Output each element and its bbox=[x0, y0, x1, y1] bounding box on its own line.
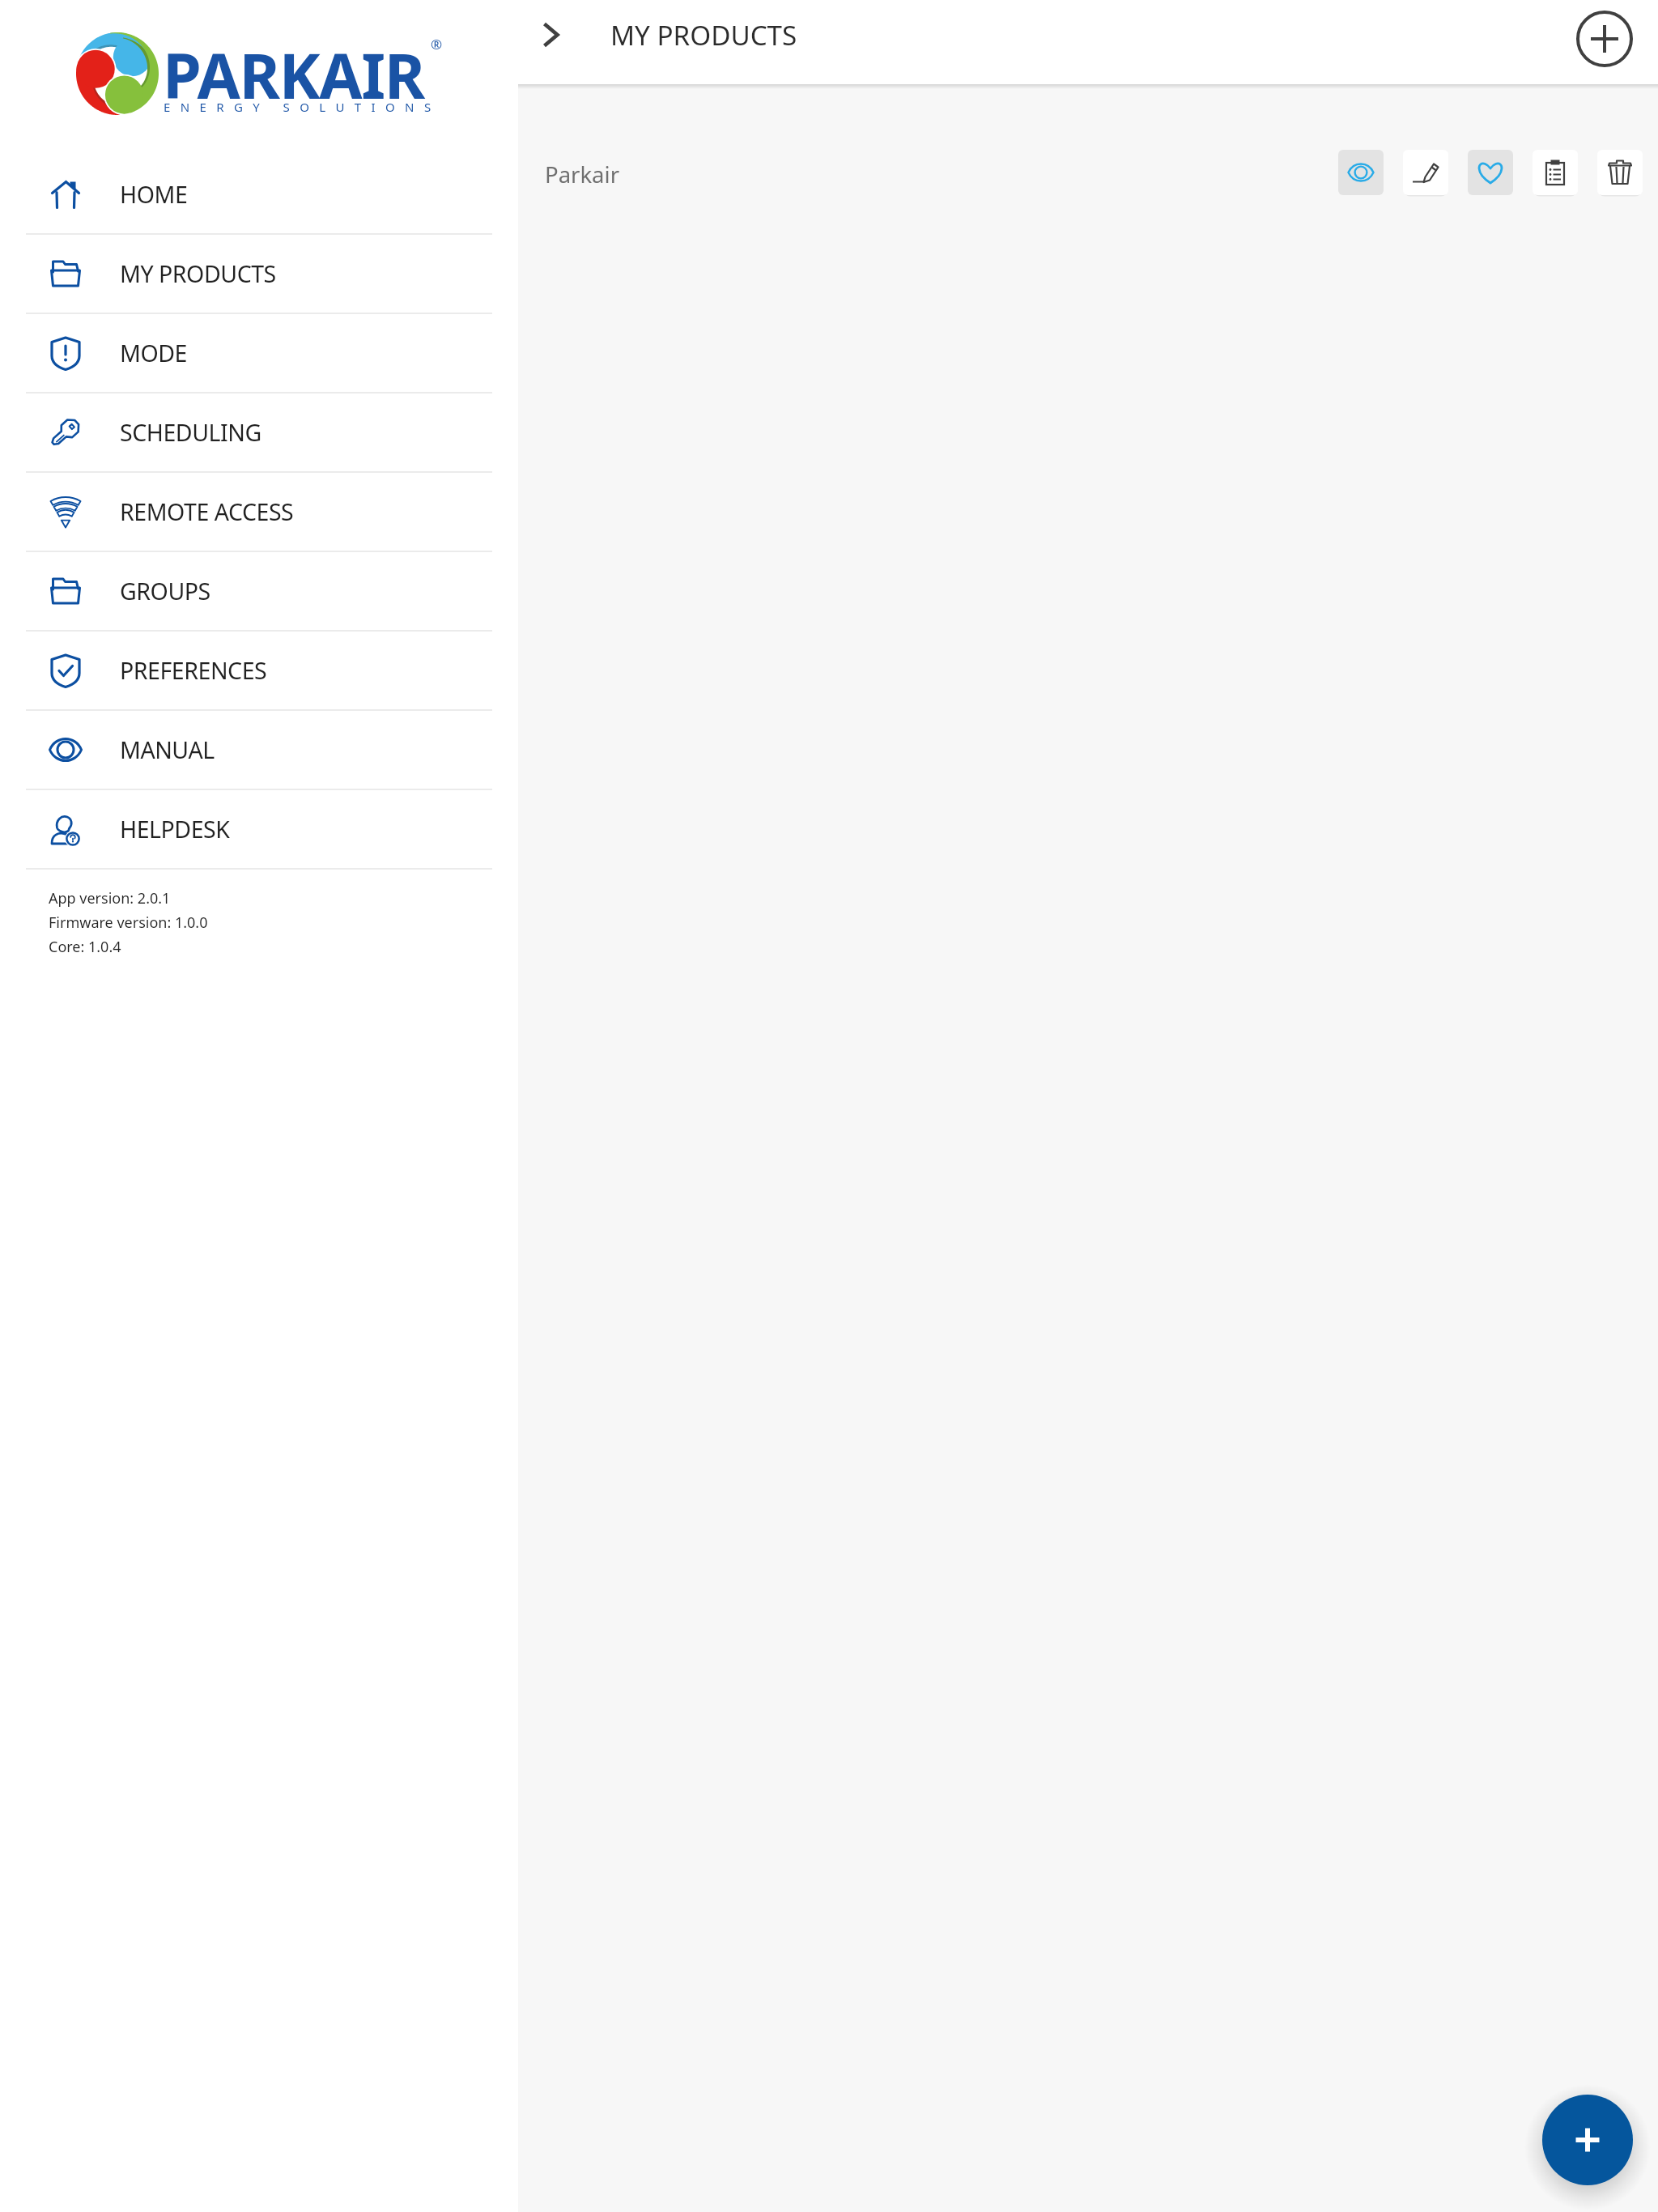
button[interactable]: REMOTE ACCESS bbox=[0, 473, 518, 552]
staticText: MY PRODUCTS bbox=[120, 258, 276, 290]
staticText: GROUPS bbox=[120, 576, 210, 607]
button[interactable]: GROUPS bbox=[0, 552, 518, 632]
staticText: PARKAIR bbox=[163, 32, 424, 117]
staticText: Core: 1.0.4 bbox=[49, 937, 121, 957]
button[interactable]: Add product bbox=[1569, 3, 1640, 74]
staticText: PREFERENCES bbox=[120, 655, 267, 687]
button[interactable]: Edit bbox=[1403, 150, 1448, 195]
staticText: REMOTE ACCESS bbox=[120, 496, 294, 528]
button[interactable]: Open navigation menu bbox=[518, 2, 583, 67]
staticText: ENERGY SOLUTIONS bbox=[164, 99, 441, 115]
button[interactable]: SCHEDULING bbox=[0, 393, 518, 473]
button[interactable]: MODE bbox=[0, 314, 518, 393]
staticText: HOME bbox=[120, 179, 188, 211]
button[interactable]: HELPDESK bbox=[0, 790, 518, 870]
staticText: Firmware version: 1.0.0 bbox=[49, 912, 208, 933]
staticText: MY PRODUCTS bbox=[610, 17, 797, 53]
button[interactable]: Details bbox=[1533, 150, 1578, 195]
button[interactable]: PREFERENCES bbox=[0, 632, 518, 711]
staticText: App version: 2.0.1 bbox=[49, 888, 171, 908]
button[interactable]: View bbox=[1338, 150, 1384, 195]
button[interactable]: MANUAL bbox=[0, 711, 518, 790]
staticText: Parkair bbox=[545, 160, 619, 189]
staticText: ® bbox=[431, 35, 443, 53]
button[interactable]: MY PRODUCTS bbox=[0, 235, 518, 314]
staticText: MANUAL bbox=[120, 734, 215, 766]
button[interactable]: Favourite bbox=[1468, 150, 1513, 195]
staticText: HELPDESK bbox=[120, 814, 230, 845]
button[interactable]: Delete bbox=[1597, 150, 1643, 195]
staticText: MODE bbox=[120, 338, 187, 369]
button[interactable]: HOME bbox=[0, 155, 518, 235]
staticText: SCHEDULING bbox=[120, 417, 261, 449]
button[interactable]: Add new product bbox=[1542, 2095, 1633, 2185]
